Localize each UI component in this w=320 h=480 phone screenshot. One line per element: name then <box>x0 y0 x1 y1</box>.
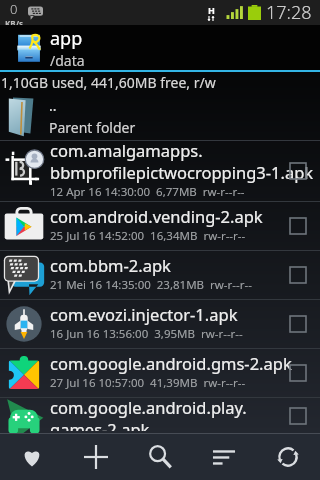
staticText: com.google.android.gms-2.apk <box>50 352 292 374</box>
staticText: games-2.apk <box>50 418 150 431</box>
button[interactable]: Search <box>128 434 192 480</box>
staticText: 1,10GB used, 441,60MB free, r/w <box>1 73 216 92</box>
staticText: H <box>208 4 215 16</box>
staticText: /data <box>50 51 85 70</box>
staticText: 0 <box>10 0 18 18</box>
button[interactable]: Sort <box>192 434 256 480</box>
staticText: 25 Jul 16 14:52:00 16,34MB rw-r--r-- <box>50 228 246 244</box>
button[interactable]: com.google.android.play. <box>0 398 320 433</box>
staticText: 16 Jun 16 13:56:00 3,95MB rw-r--r-- <box>50 326 243 342</box>
staticText: 27 Jul 16 10:57:00 41,39MB rw-r--r-- <box>50 375 246 391</box>
button[interactable]: com.android.vending-2.apk <box>0 202 320 250</box>
button[interactable]: .. <box>0 92 320 140</box>
staticText: com.bbm-2.apk <box>50 254 171 276</box>
button[interactable]: Select file <box>290 365 306 381</box>
button[interactable]: app <box>0 25 320 70</box>
staticText: .. <box>49 96 57 115</box>
staticText: com.evozi.injector-1.apk <box>50 303 238 325</box>
button[interactable]: New <box>64 434 128 480</box>
staticText: 21 Mei 16 14:35:00 23,81MB rw-r--r-- <box>50 277 252 293</box>
button[interactable]: com.evozi.injector-1.apk <box>0 300 320 348</box>
button[interactable]: Favorites <box>0 434 64 480</box>
button[interactable]: Select file <box>290 316 306 332</box>
button[interactable]: Select file <box>290 267 306 283</box>
button[interactable]: Select file <box>290 163 306 179</box>
staticText: Parent folder <box>49 118 136 137</box>
button[interactable]: Select file <box>290 408 306 424</box>
staticText: bbmprofilepictwocropping3-1.apk <box>50 161 314 183</box>
staticText: com.google.android.play. <box>50 396 247 418</box>
staticText: 12 Apr 16 14:30:00 6,77MB rw-r--r-- <box>50 184 245 199</box>
button[interactable]: Refresh <box>256 434 320 480</box>
button[interactable]: com.amalgamapps. <box>0 141 320 201</box>
button[interactable]: com.google.android.gms-2.apk <box>0 349 320 397</box>
staticText: 17:28 <box>266 0 312 25</box>
button[interactable]: com.bbm-2.apk <box>0 251 320 299</box>
staticText: com.amalgamapps. <box>50 139 203 161</box>
staticText: com.android.vending-2.apk <box>50 205 263 227</box>
button[interactable]: Select file <box>290 218 306 234</box>
staticText: KB/s <box>5 18 23 25</box>
staticText: app <box>50 26 83 51</box>
